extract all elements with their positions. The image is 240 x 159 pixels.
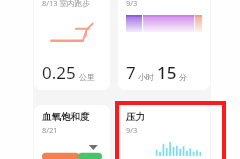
staticText: 0.25 — [42, 61, 76, 84]
staticText: 15 — [157, 61, 177, 84]
staticText: 7 — [126, 61, 136, 84]
other: Selected: 压力 stress card — [115, 101, 226, 159]
staticText: 分 — [179, 72, 187, 82]
button[interactable]: 压力 — [118, 105, 210, 159]
button[interactable]: 运动记录 — [34, 0, 110, 90]
staticText: 8/21 — [42, 125, 58, 135]
staticText: 9/3 — [126, 0, 138, 8]
staticText: 小时 — [138, 72, 154, 82]
staticText: 9/3 — [126, 125, 138, 135]
staticText: 公里 — [79, 72, 95, 82]
staticText: 8/13 室内跑步 — [42, 0, 90, 8]
button[interactable]: 睡眠 — [118, 0, 210, 90]
staticText: 血氧饱和度 — [42, 111, 90, 123]
button[interactable]: 血氧饱和度 — [34, 105, 110, 159]
staticText: 压力 — [126, 111, 145, 123]
